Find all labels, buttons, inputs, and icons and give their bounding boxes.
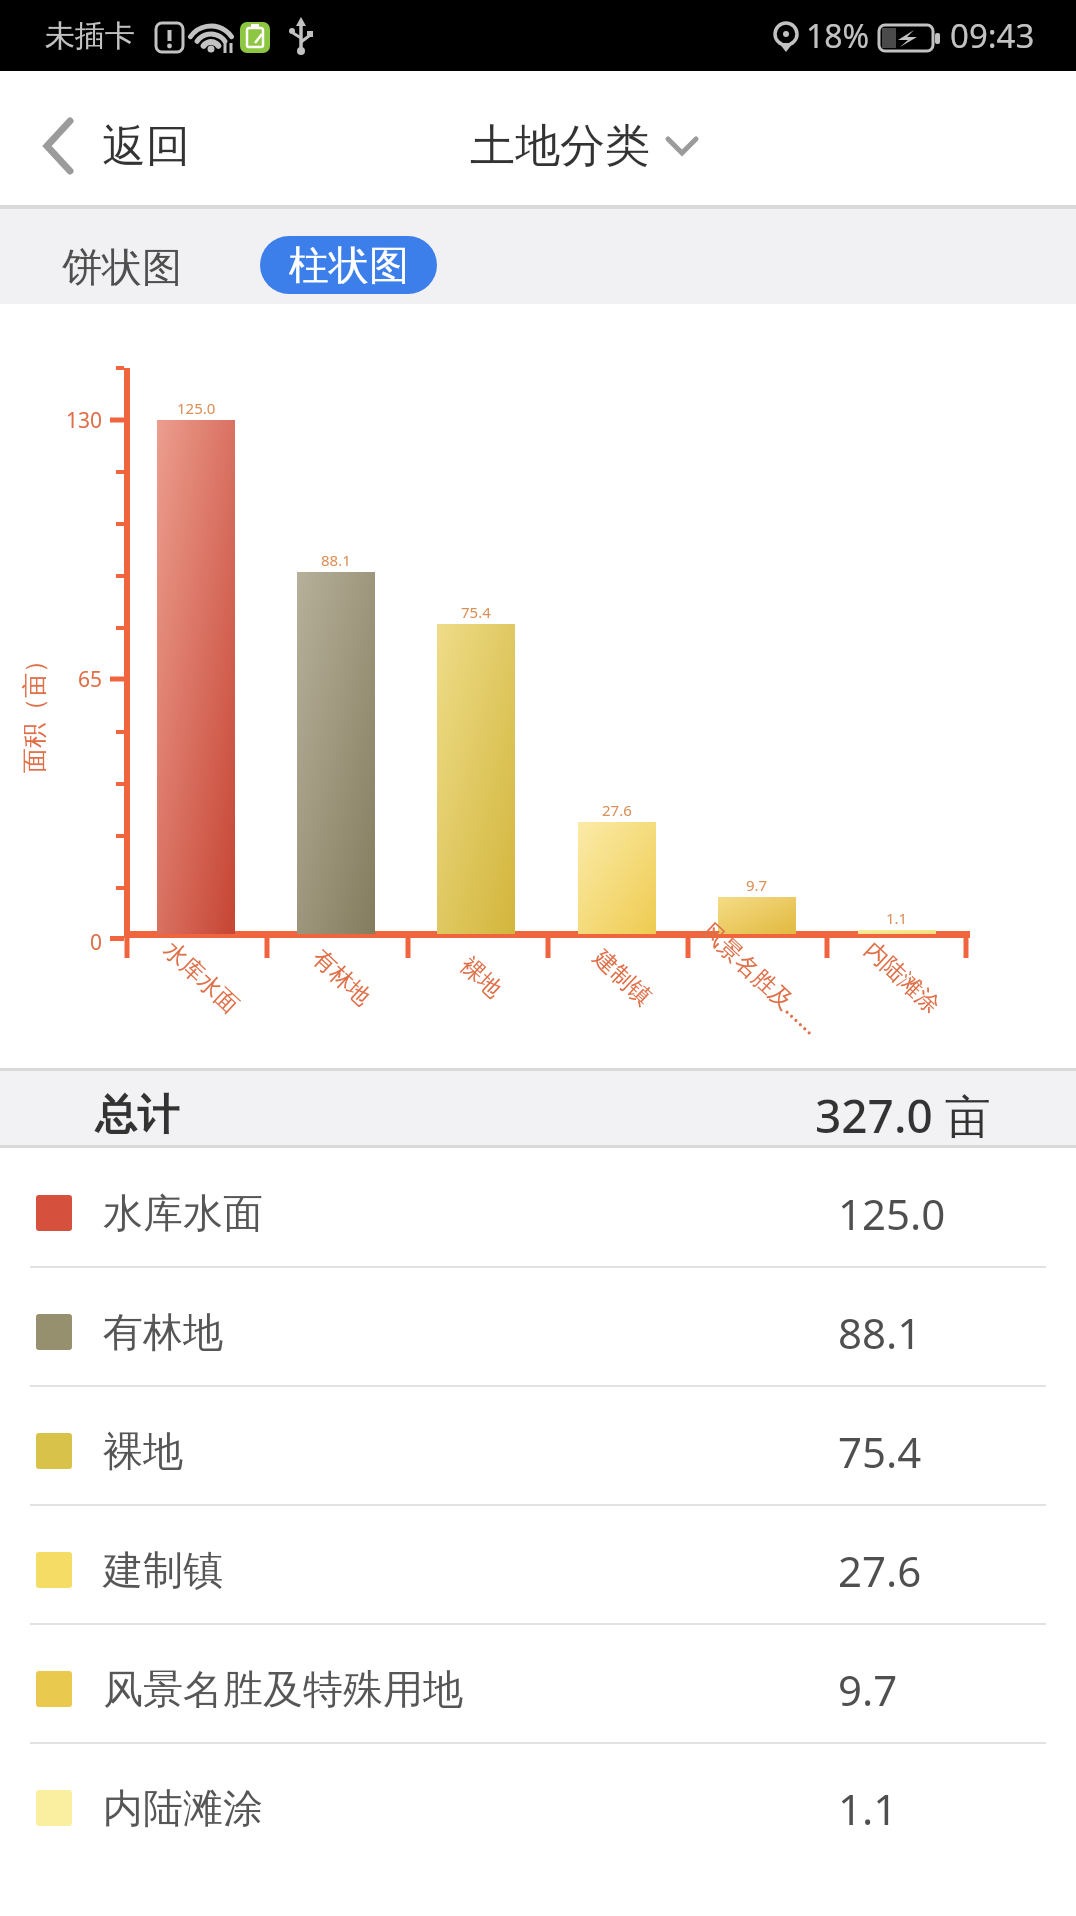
staticText: 0 [90, 928, 103, 957]
staticText: 风景名胜及…… [696, 914, 828, 1041]
staticText: 未插卡 [45, 17, 135, 55]
staticText: 327.0 亩 [815, 1084, 991, 1147]
staticText: 建制镇 [587, 943, 658, 1012]
staticText: 9.7 [746, 875, 768, 894]
staticText: 水库水面 [157, 935, 245, 1019]
staticText: 内陆滩涂 [858, 935, 946, 1019]
staticText: 88.1 [321, 550, 351, 569]
staticText: 130 [66, 406, 103, 435]
staticText: 65 [78, 665, 103, 694]
staticText: 9.7 [838, 1661, 898, 1718]
staticText: 75.4 [838, 1423, 922, 1480]
staticText: 建制镇 [103, 1545, 223, 1595]
staticText: 柱状图 [289, 240, 409, 290]
staticText: 总计 [95, 1089, 179, 1142]
staticText: 裸地 [103, 1426, 183, 1476]
staticText: 返回 [102, 119, 190, 174]
staticText: 88.1 [838, 1304, 922, 1361]
staticText: 125.0 [177, 398, 216, 417]
staticText: 1.1 [886, 908, 908, 927]
staticText: 面积（亩） [19, 648, 50, 773]
staticText: 18% [806, 14, 870, 58]
staticText: 有林地 [103, 1307, 223, 1357]
staticText: 75.4 [461, 602, 491, 621]
staticText: 27.6 [838, 1542, 922, 1599]
staticText: 水库水面 [103, 1188, 263, 1238]
staticText: 1.1 [838, 1780, 898, 1837]
staticText: 27.6 [602, 800, 632, 819]
staticText: 裸地 [454, 951, 508, 1004]
staticText: 内陆滩涂 [103, 1783, 263, 1833]
staticText: 土地分类 [470, 118, 650, 175]
staticText: 09:43 [950, 13, 1035, 58]
staticText: 饼状图 [62, 242, 182, 292]
staticText: 有林地 [306, 943, 377, 1012]
staticText: 风景名胜及特殊用地 [103, 1664, 463, 1714]
staticText: 125.0 [838, 1185, 946, 1242]
